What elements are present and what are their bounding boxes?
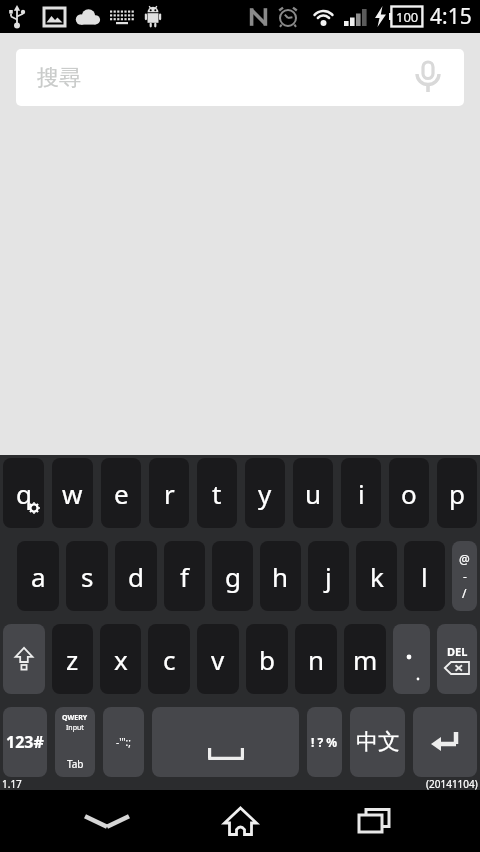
staticText: 123# [6,731,44,753]
button[interactable]: DEL [437,624,477,694]
button[interactable]: v [197,624,239,694]
staticText: Tab [67,757,84,771]
button[interactable]: z [52,624,93,694]
staticText: l [421,559,428,594]
staticText: -'":; [116,735,131,749]
staticText: o [401,476,417,511]
button[interactable]: y [245,458,285,528]
staticText: b [259,642,275,677]
staticText: Input [66,723,84,733]
button[interactable]: g [212,541,253,611]
button[interactable]: h [260,541,301,611]
button[interactable] [152,707,299,777]
staticText: v [211,642,225,677]
button[interactable]: q [3,458,44,528]
staticText: 100 [396,8,419,26]
staticText: q [16,476,32,511]
staticText: p [449,476,465,511]
staticText: u [305,476,322,511]
button[interactable]: r [149,458,189,528]
staticText: f [180,559,189,594]
staticText: x [114,642,128,677]
button[interactable]: b [246,624,288,694]
button[interactable]: k [356,541,397,611]
staticText: w [62,476,83,511]
button[interactable] [413,707,477,777]
button[interactable]: ! ? % [307,707,342,777]
button[interactable] [3,624,45,694]
staticText: r [164,476,175,511]
button[interactable]: 123# [3,707,47,777]
button[interactable] [307,790,440,852]
button[interactable]: -'":; [103,707,144,777]
button[interactable]: QWERY [55,707,95,777]
staticText: h [272,559,289,594]
button[interactable]: n [295,624,337,694]
button[interactable]: m [344,624,386,694]
staticText: 4:15 [430,2,472,31]
staticText: g [225,559,241,594]
staticText: c [163,642,176,677]
staticText: / [462,585,467,601]
button[interactable]: c [148,624,190,694]
staticText: a [31,559,46,594]
button[interactable]: u [293,458,333,528]
staticText: QWERY [62,713,88,723]
button[interactable]: j [308,541,349,611]
button[interactable] [414,62,442,93]
staticText: y [258,476,272,511]
button[interactable]: f [164,541,205,611]
staticText: (20141104) [426,777,478,790]
button[interactable]: d [115,541,157,611]
button[interactable]: 搜尋 [16,49,464,106]
staticText: - [463,568,467,584]
button[interactable]: p [437,458,477,528]
staticText: 搜尋 [37,64,81,92]
staticText: k [370,559,384,594]
staticText: 中文 [356,728,400,756]
button[interactable]: i [341,458,381,528]
staticText: d [128,559,144,594]
staticText: n [308,642,325,677]
staticText: s [81,559,94,594]
staticText: m [353,642,378,677]
staticText: DEL [447,644,468,659]
button[interactable]: s [66,541,108,611]
button[interactable] [393,624,430,694]
button[interactable]: l [404,541,445,611]
button[interactable] [174,790,307,852]
button[interactable]: a [17,541,59,611]
staticText: t [212,476,222,511]
button[interactable]: 中文 [350,707,405,777]
staticText: 1.17 [2,777,22,790]
staticText: @ [459,551,470,567]
button[interactable] [40,790,174,852]
button[interactable]: @ [452,541,477,611]
staticText: j [325,559,332,594]
button[interactable]: w [52,458,93,528]
staticText: e [114,476,129,511]
button[interactable]: x [100,624,141,694]
button[interactable]: e [101,458,141,528]
staticText: z [66,642,79,677]
button[interactable]: o [389,458,429,528]
button[interactable]: t [197,458,237,528]
staticText: i [358,476,365,511]
staticText: ! ? % [311,734,338,750]
